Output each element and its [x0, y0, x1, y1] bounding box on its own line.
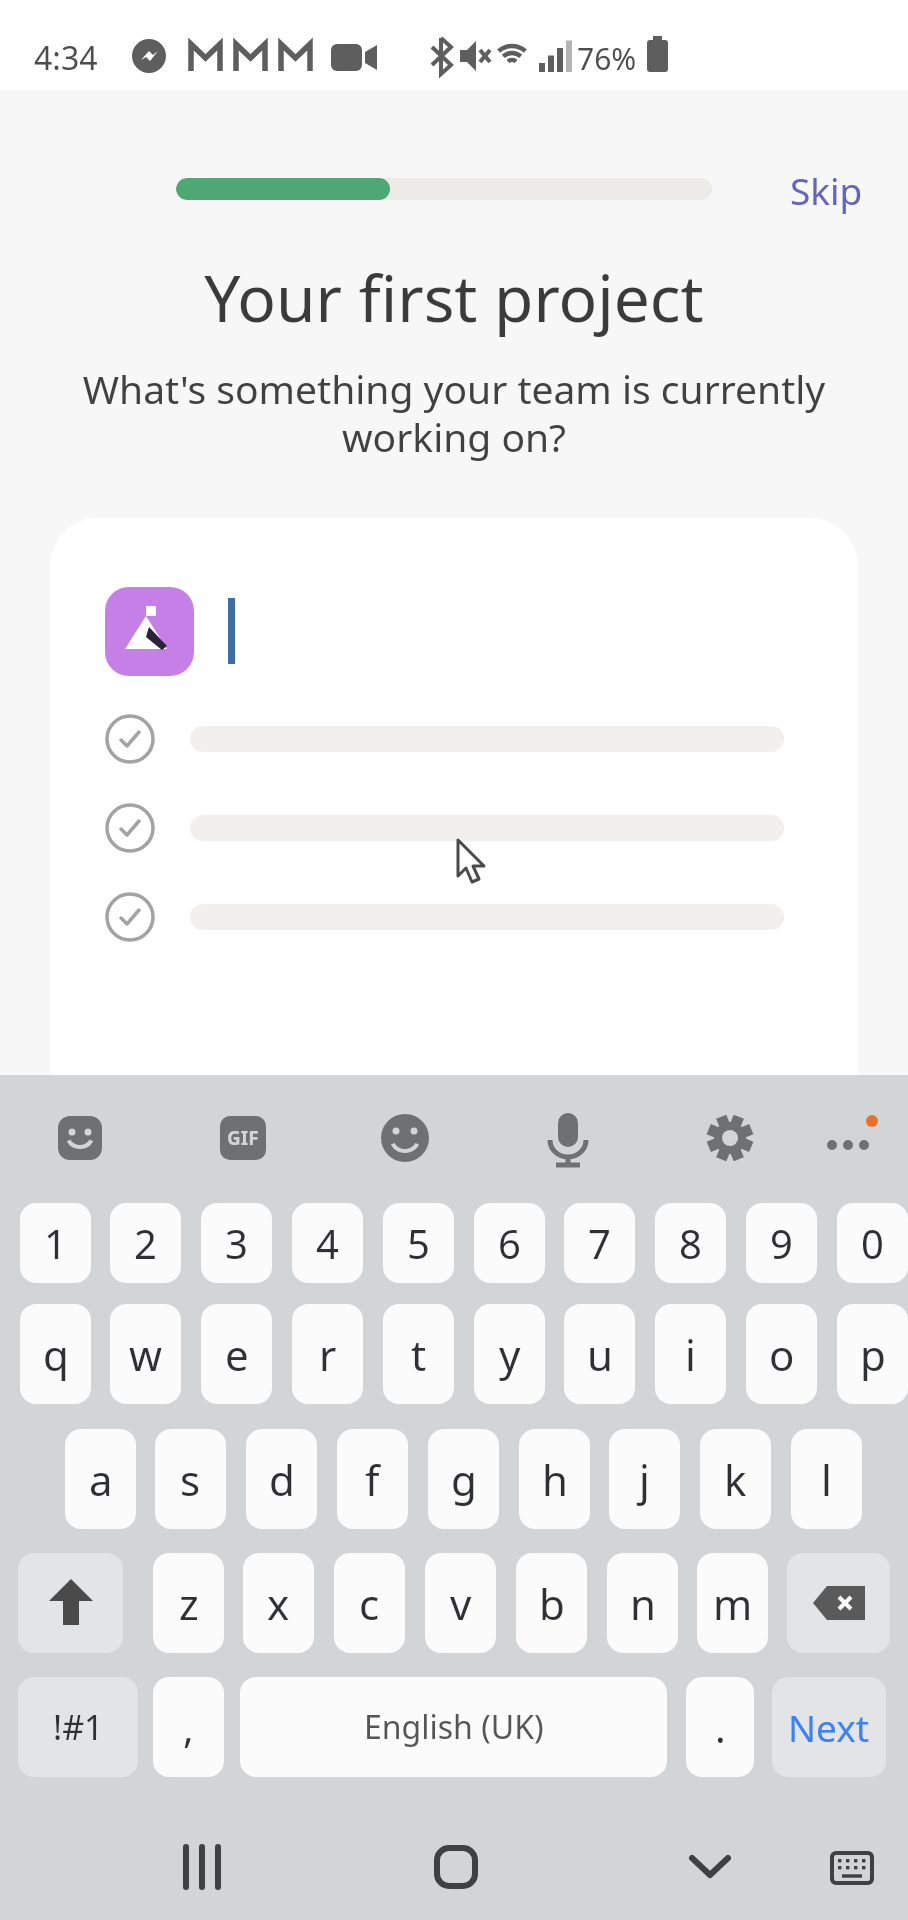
staticText: ,	[183, 1700, 194, 1754]
staticText: GIF	[227, 1125, 259, 1151]
button[interactable]: 7	[564, 1203, 635, 1283]
button[interactable]	[105, 587, 194, 676]
staticText: z	[179, 1575, 199, 1632]
staticText: 3	[225, 1216, 248, 1270]
button[interactable]	[190, 815, 784, 841]
button[interactable]: ,	[153, 1677, 224, 1777]
staticText: b	[539, 1575, 565, 1632]
button[interactable]: English (UK)	[240, 1677, 667, 1777]
staticText: d	[269, 1451, 295, 1508]
staticText: p	[860, 1326, 886, 1383]
button[interactable]: s	[155, 1429, 226, 1529]
staticText: What's something your team is currently …	[0, 362, 908, 463]
staticText: s	[180, 1451, 201, 1508]
staticText: English (UK)	[364, 1705, 544, 1749]
button[interactable]: q	[20, 1304, 91, 1404]
staticText: u	[587, 1326, 613, 1383]
staticText: t	[411, 1326, 427, 1383]
staticText: Next	[788, 1702, 870, 1752]
staticText: c	[359, 1575, 380, 1632]
button[interactable]: 6	[474, 1203, 545, 1283]
staticText: x	[267, 1575, 290, 1632]
button[interactable]: h	[519, 1429, 590, 1529]
button[interactable]: w	[110, 1304, 181, 1404]
staticText: Your first project	[0, 254, 908, 341]
staticText: !#1	[53, 1704, 104, 1750]
button[interactable]: u	[564, 1304, 635, 1404]
staticText: v	[450, 1575, 472, 1632]
staticText: 4:34	[34, 36, 98, 80]
button[interactable]: t	[383, 1304, 454, 1404]
staticText: 4	[316, 1216, 339, 1270]
staticText: n	[630, 1575, 656, 1632]
staticText: 8	[679, 1216, 702, 1270]
staticText: h	[542, 1451, 568, 1508]
button[interactable]: z	[153, 1553, 224, 1653]
button[interactable]: v	[425, 1553, 496, 1653]
button[interactable]: k	[700, 1429, 771, 1529]
button[interactable]: GIF	[220, 1116, 266, 1160]
button[interactable]: f	[337, 1429, 408, 1529]
staticText: 5	[407, 1216, 430, 1270]
button[interactable]: y	[474, 1304, 545, 1404]
staticText: w	[129, 1326, 163, 1383]
button[interactable]: 3	[201, 1203, 272, 1283]
button[interactable]: 4	[292, 1203, 363, 1283]
button[interactable]: 0	[837, 1203, 908, 1283]
staticText: j	[639, 1451, 650, 1508]
staticText: o	[769, 1326, 795, 1383]
staticText: f	[365, 1451, 380, 1508]
button[interactable]: 2	[110, 1203, 181, 1283]
button[interactable]: Skip	[790, 165, 863, 215]
staticText: e	[225, 1326, 249, 1383]
button[interactable]: e	[201, 1304, 272, 1404]
button[interactable]: l	[791, 1429, 862, 1529]
button[interactable]: o	[746, 1304, 817, 1404]
staticText: r	[319, 1326, 337, 1383]
button[interactable]: b	[516, 1553, 587, 1653]
staticText: a	[89, 1451, 113, 1508]
staticText: y	[499, 1326, 521, 1383]
button[interactable]: x	[243, 1553, 314, 1653]
button[interactable]: Next	[772, 1677, 886, 1777]
button[interactable]: 5	[383, 1203, 454, 1283]
button[interactable]	[18, 1553, 123, 1653]
staticText: 9	[770, 1216, 793, 1270]
button[interactable]: p	[837, 1304, 908, 1404]
button[interactable]: 1	[20, 1203, 91, 1283]
button[interactable]: n	[607, 1553, 678, 1653]
button[interactable]: 9	[746, 1203, 817, 1283]
staticText: l	[821, 1451, 832, 1508]
staticText: 0	[861, 1216, 884, 1270]
button[interactable]: a	[65, 1429, 136, 1529]
staticText: m	[713, 1575, 753, 1632]
button[interactable]: j	[609, 1429, 680, 1529]
staticText: k	[724, 1451, 747, 1508]
button[interactable]	[787, 1553, 890, 1653]
button[interactable]: g	[428, 1429, 499, 1529]
button[interactable]: i	[655, 1304, 726, 1404]
button[interactable]: .	[686, 1677, 754, 1777]
staticText: i	[685, 1326, 696, 1383]
staticText: .	[715, 1700, 726, 1754]
button[interactable]: m	[697, 1553, 768, 1653]
staticText: 76%	[577, 38, 637, 79]
staticText: q	[43, 1326, 69, 1383]
staticText: 1	[44, 1216, 67, 1270]
staticText: 2	[134, 1216, 157, 1270]
button[interactable]: c	[334, 1553, 405, 1653]
staticText: 6	[498, 1216, 521, 1270]
button[interactable]: d	[246, 1429, 317, 1529]
staticText: 7	[588, 1216, 611, 1270]
staticText: Skip	[790, 165, 863, 215]
button[interactable]: r	[292, 1304, 363, 1404]
button[interactable]: 8	[655, 1203, 726, 1283]
staticText: g	[451, 1451, 477, 1508]
button[interactable]: !#1	[18, 1677, 138, 1777]
